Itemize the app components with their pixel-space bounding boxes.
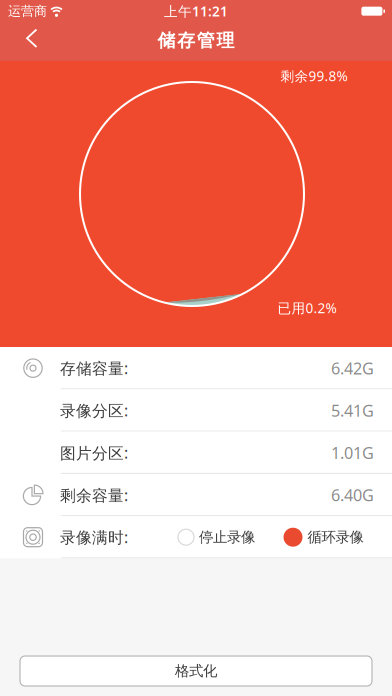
staticText: 剩余容量: xyxy=(60,484,128,506)
button[interactable]: Back xyxy=(0,20,53,61)
staticText: 5.41G xyxy=(331,399,374,422)
staticText: 存储容量: xyxy=(60,357,128,379)
staticText: 上午11:21 xyxy=(164,2,228,20)
staticText: 循环录像 xyxy=(307,528,363,546)
staticText: 录像分区: xyxy=(60,400,128,421)
button[interactable]: 格式化 xyxy=(20,656,372,686)
staticText: 6.42G xyxy=(331,357,374,379)
staticText: 格式化 xyxy=(175,662,217,680)
button[interactable]: 循环录像 xyxy=(283,516,379,558)
staticText: 录像满时: xyxy=(60,526,128,548)
button[interactable]: 停止录像 xyxy=(178,516,270,558)
staticText: 停止录像 xyxy=(199,528,255,546)
staticText: 6.40G xyxy=(331,484,374,506)
staticText: 剩余99.8% xyxy=(280,67,347,85)
staticText: 已用0.2% xyxy=(277,299,336,317)
staticText: 运营商 xyxy=(8,3,47,19)
staticText: 1.01G xyxy=(331,442,374,464)
staticText: 图片分区: xyxy=(60,442,128,463)
staticText: 储存管理 xyxy=(158,29,234,52)
